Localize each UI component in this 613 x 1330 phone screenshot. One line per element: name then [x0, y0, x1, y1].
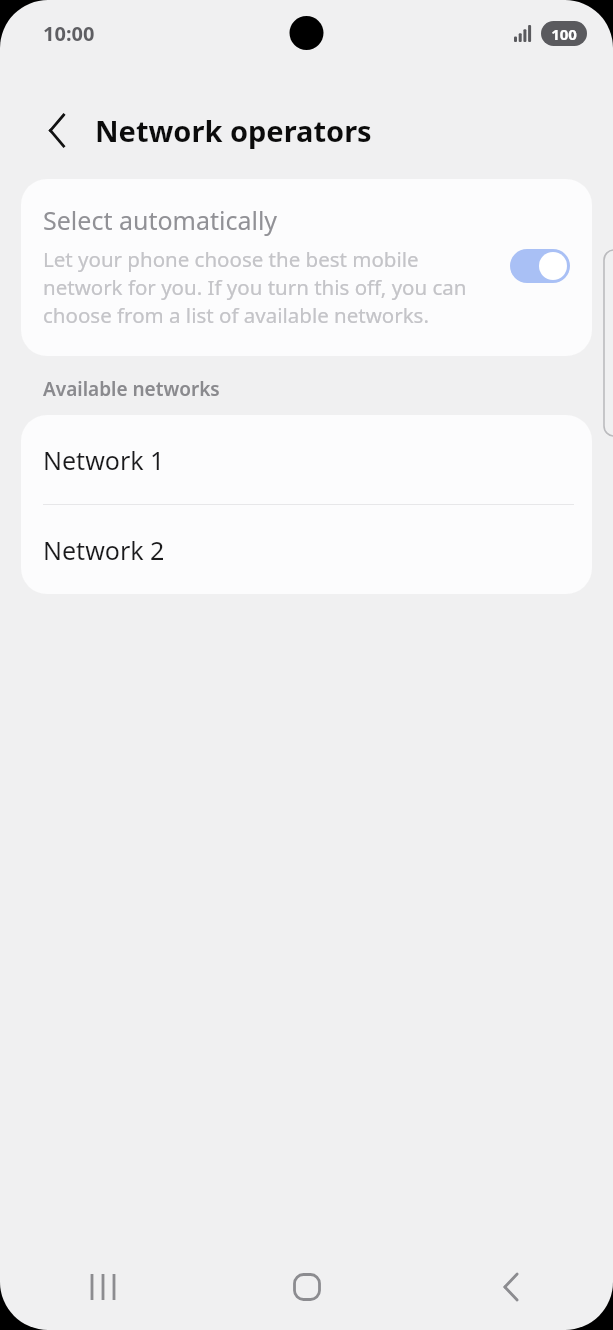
staticText: Let your phone choose the best mobile ne…	[43, 245, 498, 329]
staticText: Available networks	[43, 376, 220, 402]
staticText: Network operators	[95, 111, 372, 150]
button[interactable]: Network 2	[21, 505, 592, 594]
button[interactable]: Back	[409, 1244, 613, 1330]
button[interactable]: Back	[29, 102, 85, 158]
staticText: 100	[551, 24, 577, 44]
staticText: Network 2	[43, 533, 165, 567]
staticText: Select automatically	[43, 203, 278, 237]
button[interactable]: Recents	[0, 1244, 205, 1330]
button[interactable]: Select automatically	[21, 179, 592, 356]
button[interactable]: Home	[205, 1244, 409, 1330]
button[interactable]: Network 1	[21, 415, 592, 504]
staticText: 10:00	[43, 20, 95, 47]
button[interactable]	[510, 249, 570, 283]
staticText: Network 1	[43, 443, 165, 477]
